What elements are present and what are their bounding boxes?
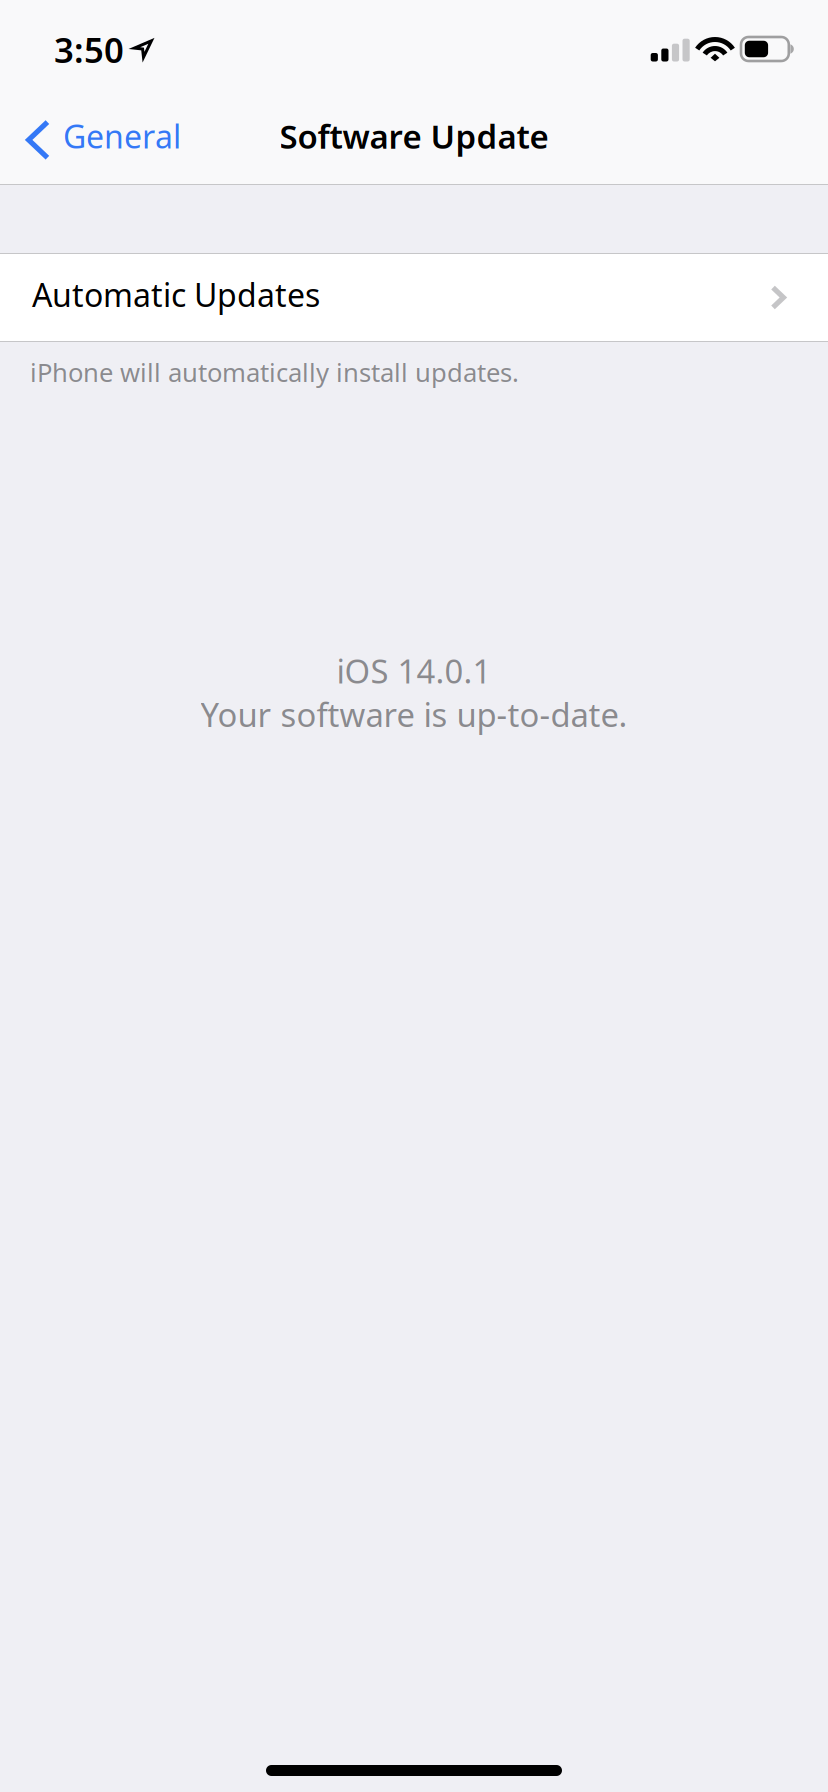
staticText: iOS 14.0.1 — [336, 649, 491, 693]
staticText: General — [63, 115, 181, 157]
staticText: Automatic Updates — [32, 273, 320, 316]
staticText: iPhone will automatically install update… — [30, 355, 519, 389]
button[interactable]: General — [0, 88, 199, 184]
staticText: 3:50 — [54, 26, 124, 72]
button[interactable]: Automatic Updates — [0, 254, 828, 341]
staticText: Software Update — [279, 114, 548, 158]
staticText: Your software is up-to-date. — [200, 693, 627, 736]
